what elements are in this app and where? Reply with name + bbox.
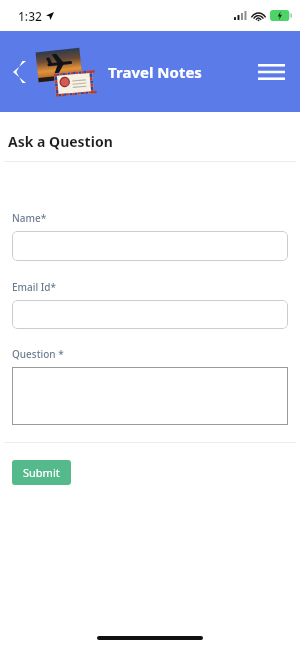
staticText: Name* bbox=[12, 211, 47, 225]
button[interactable]: Text field bbox=[12, 367, 288, 425]
staticText: Email Id* bbox=[12, 280, 56, 294]
button[interactable]: Menu bbox=[252, 53, 290, 91]
staticText: 1:32 bbox=[18, 8, 42, 24]
button[interactable]: Text field bbox=[12, 231, 288, 261]
button[interactable]: Text field bbox=[12, 300, 288, 329]
button[interactable]: Submit bbox=[12, 460, 71, 485]
staticText: Submit bbox=[23, 465, 60, 480]
staticText: Ask a Question bbox=[8, 132, 113, 151]
button[interactable]: Back bbox=[2, 55, 36, 89]
staticText: Travel Notes bbox=[108, 62, 202, 82]
staticText: Question * bbox=[12, 347, 64, 361]
